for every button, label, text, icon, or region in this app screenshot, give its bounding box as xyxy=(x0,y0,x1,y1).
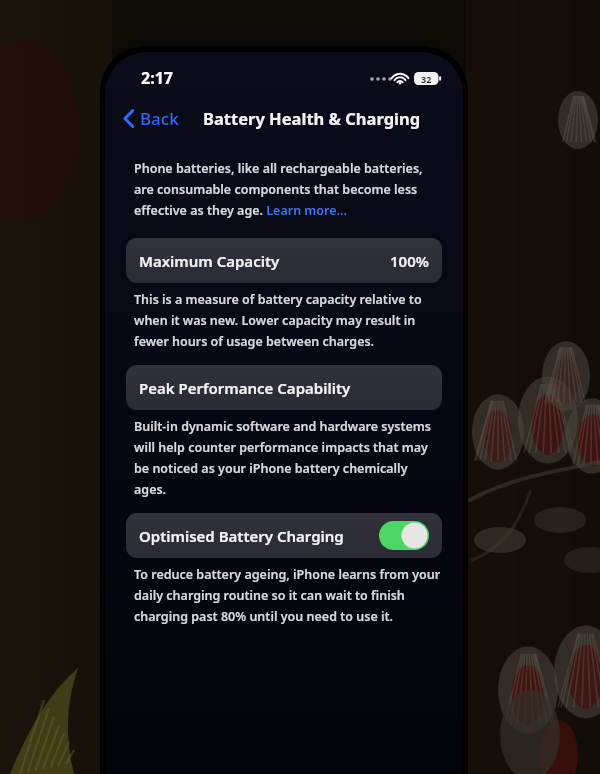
button[interactable]: Optimised Battery Charging xyxy=(126,513,442,558)
staticText: Phone batteries, like all rechargeable b… xyxy=(134,160,441,219)
button[interactable]: Optimised Battery Charging toggle, on xyxy=(379,521,429,550)
button[interactable]: Maximum Capacity xyxy=(126,238,442,283)
staticText: 100% xyxy=(390,251,429,271)
staticText: Battery Health & Charging xyxy=(203,107,421,129)
staticText: To reduce battery ageing, iPhone learns … xyxy=(134,566,441,625)
button[interactable]: Peak Performance Capability xyxy=(126,365,442,410)
staticText: Optimised Battery Charging xyxy=(139,526,344,546)
staticText: This is a measure of battery capacity re… xyxy=(134,291,441,350)
staticText: Back xyxy=(140,107,179,130)
staticText: Built-in dynamic software and hardware s… xyxy=(134,418,441,498)
staticText: 32 xyxy=(421,73,432,85)
staticText: Peak Performance Capability xyxy=(139,378,351,398)
staticText: 2:17 xyxy=(141,67,173,89)
staticText: Maximum Capacity xyxy=(139,251,280,271)
button[interactable]: Back xyxy=(119,103,183,134)
